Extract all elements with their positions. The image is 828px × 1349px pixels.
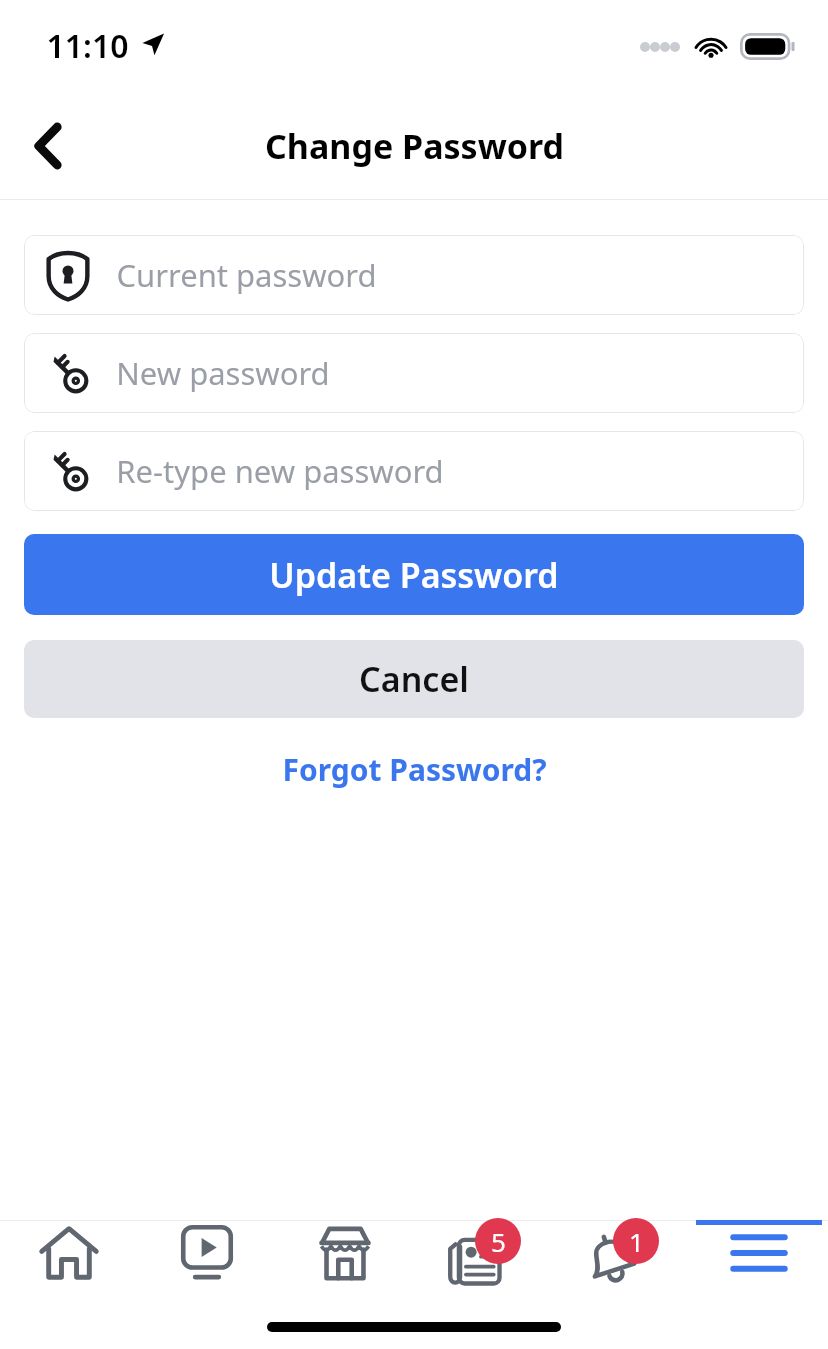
- button[interactable]: Current password: [24, 235, 804, 315]
- button[interactable]: Update Password: [24, 534, 804, 615]
- staticText: Re-type new password: [116, 450, 444, 492]
- staticText: Cancel: [359, 656, 469, 702]
- button[interactable]: Menu: [690, 1220, 828, 1310]
- button[interactable]: Home: [0, 1220, 138, 1310]
- staticText: Change Password: [265, 123, 564, 169]
- button[interactable]: Notifications, 1 new: [552, 1220, 690, 1310]
- staticText: Update Password: [269, 552, 559, 598]
- staticText: 11:10: [46, 24, 129, 68]
- button[interactable]: Re-type new password: [24, 431, 804, 511]
- button[interactable]: New password: [24, 333, 804, 413]
- staticText: 1: [629, 1224, 644, 1259]
- button[interactable]: News, 5 new: [414, 1220, 552, 1310]
- staticText: New password: [116, 352, 330, 394]
- button[interactable]: Marketplace: [276, 1220, 414, 1310]
- staticText: Forgot Password?: [282, 749, 547, 790]
- button[interactable]: Forgot Password?: [266, 743, 563, 796]
- button[interactable]: Cancel: [24, 640, 804, 718]
- staticText: 5: [491, 1224, 506, 1259]
- button[interactable]: Video: [138, 1220, 276, 1310]
- button[interactable]: Back: [14, 112, 82, 180]
- staticText: Current password: [116, 254, 377, 296]
